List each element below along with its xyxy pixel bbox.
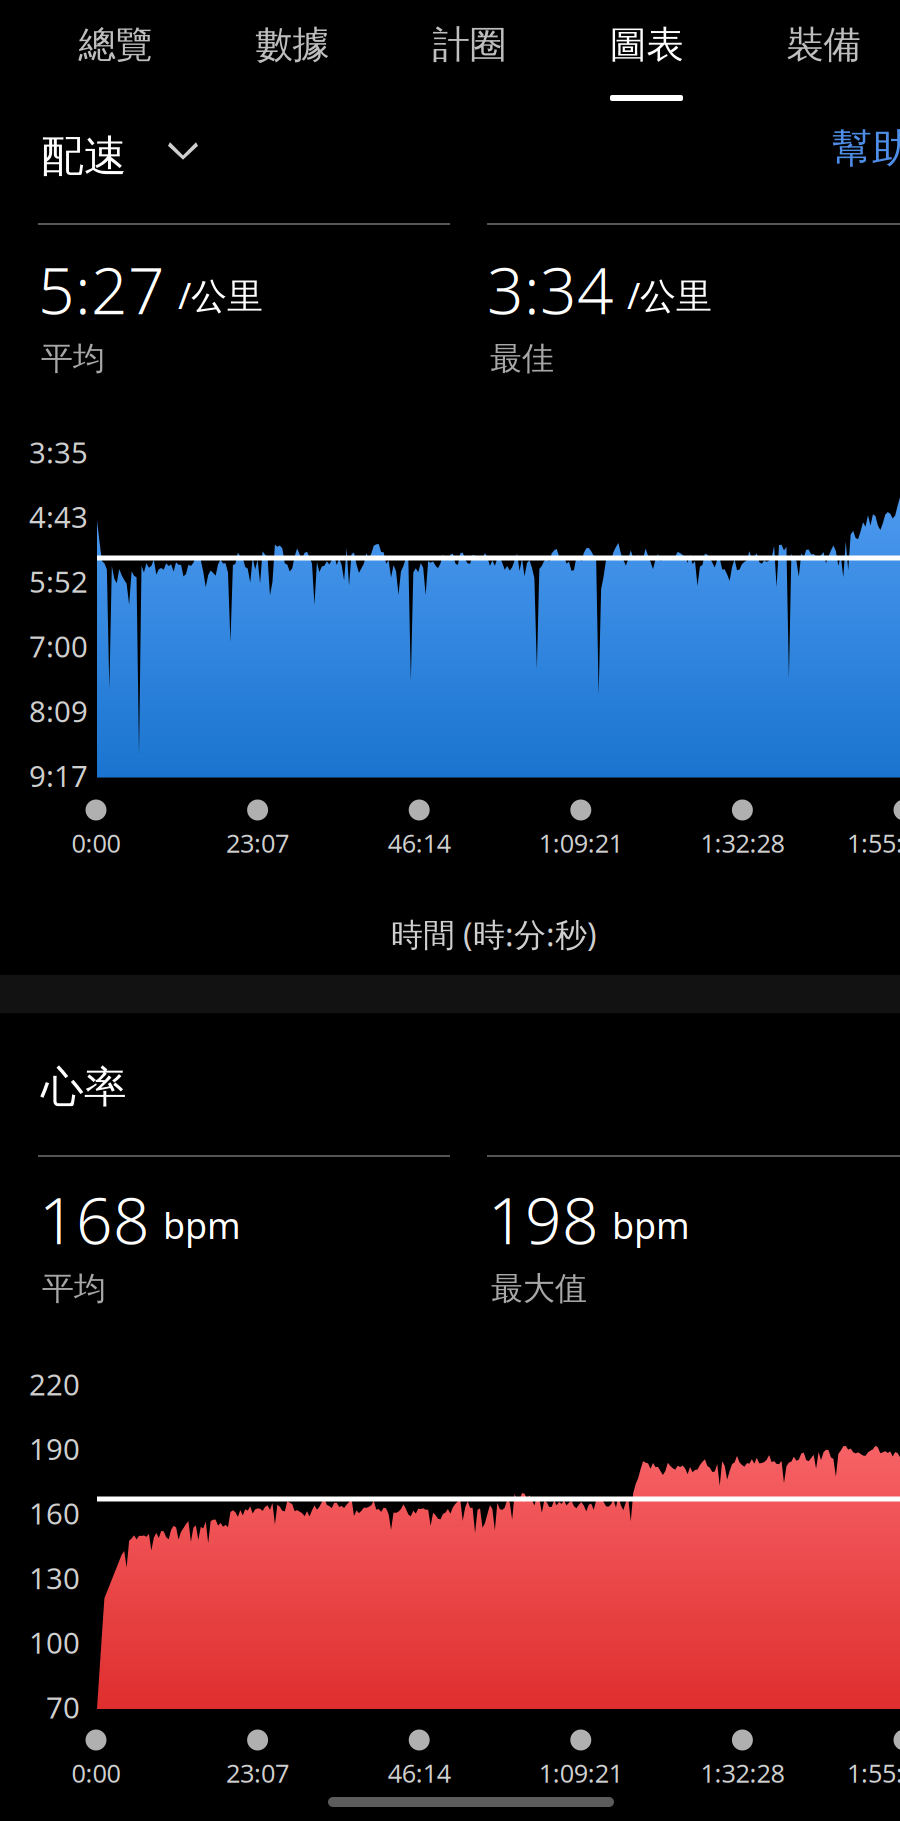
staticText: 8:09 <box>29 691 88 730</box>
staticText: 1:55:35 <box>847 1756 900 1790</box>
staticText: 100 <box>29 1623 80 1662</box>
staticText: 裝備 <box>786 22 860 68</box>
staticText: 數據 <box>255 22 329 68</box>
staticText: 70 <box>46 1687 80 1726</box>
staticText: 1:32:28 <box>700 1756 784 1790</box>
staticText: 1:09:21 <box>539 1756 623 1790</box>
staticText: 最大值 <box>491 1269 587 1308</box>
staticText: 0:00 <box>71 1756 120 1790</box>
staticText: 7:00 <box>29 627 88 666</box>
staticText: bpm <box>612 1201 690 1249</box>
staticText: 最佳 <box>490 339 554 378</box>
staticText: 130 <box>29 1558 80 1597</box>
staticText: 3:34 <box>487 247 614 332</box>
staticText: 平均 <box>41 339 105 378</box>
staticText: 23:07 <box>226 1756 289 1790</box>
staticText: 時間 (時:分:秒) <box>391 913 597 955</box>
button[interactable]: 幫助 <box>822 112 900 185</box>
staticText: 5:52 <box>29 562 88 601</box>
staticText: 160 <box>29 1494 80 1533</box>
staticText: /公里 <box>627 271 712 319</box>
staticText: 9:17 <box>29 756 88 795</box>
staticText: 1:32:28 <box>700 826 784 860</box>
staticText: 190 <box>29 1429 80 1468</box>
staticText: 計圈 <box>432 22 506 68</box>
staticText: bpm <box>163 1201 241 1249</box>
staticText: 46:14 <box>388 1756 451 1790</box>
staticText: 幫助 <box>832 124 900 173</box>
staticText: 總覽 <box>78 22 152 68</box>
staticText: 198 <box>488 1177 599 1262</box>
button[interactable]: 圖表 <box>558 0 735 110</box>
staticText: 4:43 <box>29 497 88 536</box>
button[interactable]: 裝備 <box>735 0 900 110</box>
staticText: /公里 <box>178 271 263 319</box>
staticText: 平均 <box>42 1269 106 1308</box>
staticText: 0:00 <box>71 826 120 860</box>
button[interactable]: 計圈 <box>381 0 558 110</box>
staticText: 圖表 <box>609 22 683 68</box>
staticText: 5:27 <box>38 247 165 332</box>
button[interactable]: 配速 <box>0 118 239 194</box>
staticText: 配速 <box>41 130 127 182</box>
staticText: 1:09:21 <box>539 826 623 860</box>
staticText: 23:07 <box>226 826 289 860</box>
staticText: 168 <box>39 1177 150 1262</box>
staticText: 220 <box>29 1364 80 1403</box>
staticText: 心率 <box>41 1061 127 1113</box>
staticText: 1:55:35 <box>847 826 900 860</box>
button[interactable]: 總覽 <box>27 0 204 110</box>
button[interactable]: 數據 <box>204 0 381 110</box>
staticText: 3:35 <box>29 432 88 471</box>
staticText: 46:14 <box>388 826 451 860</box>
